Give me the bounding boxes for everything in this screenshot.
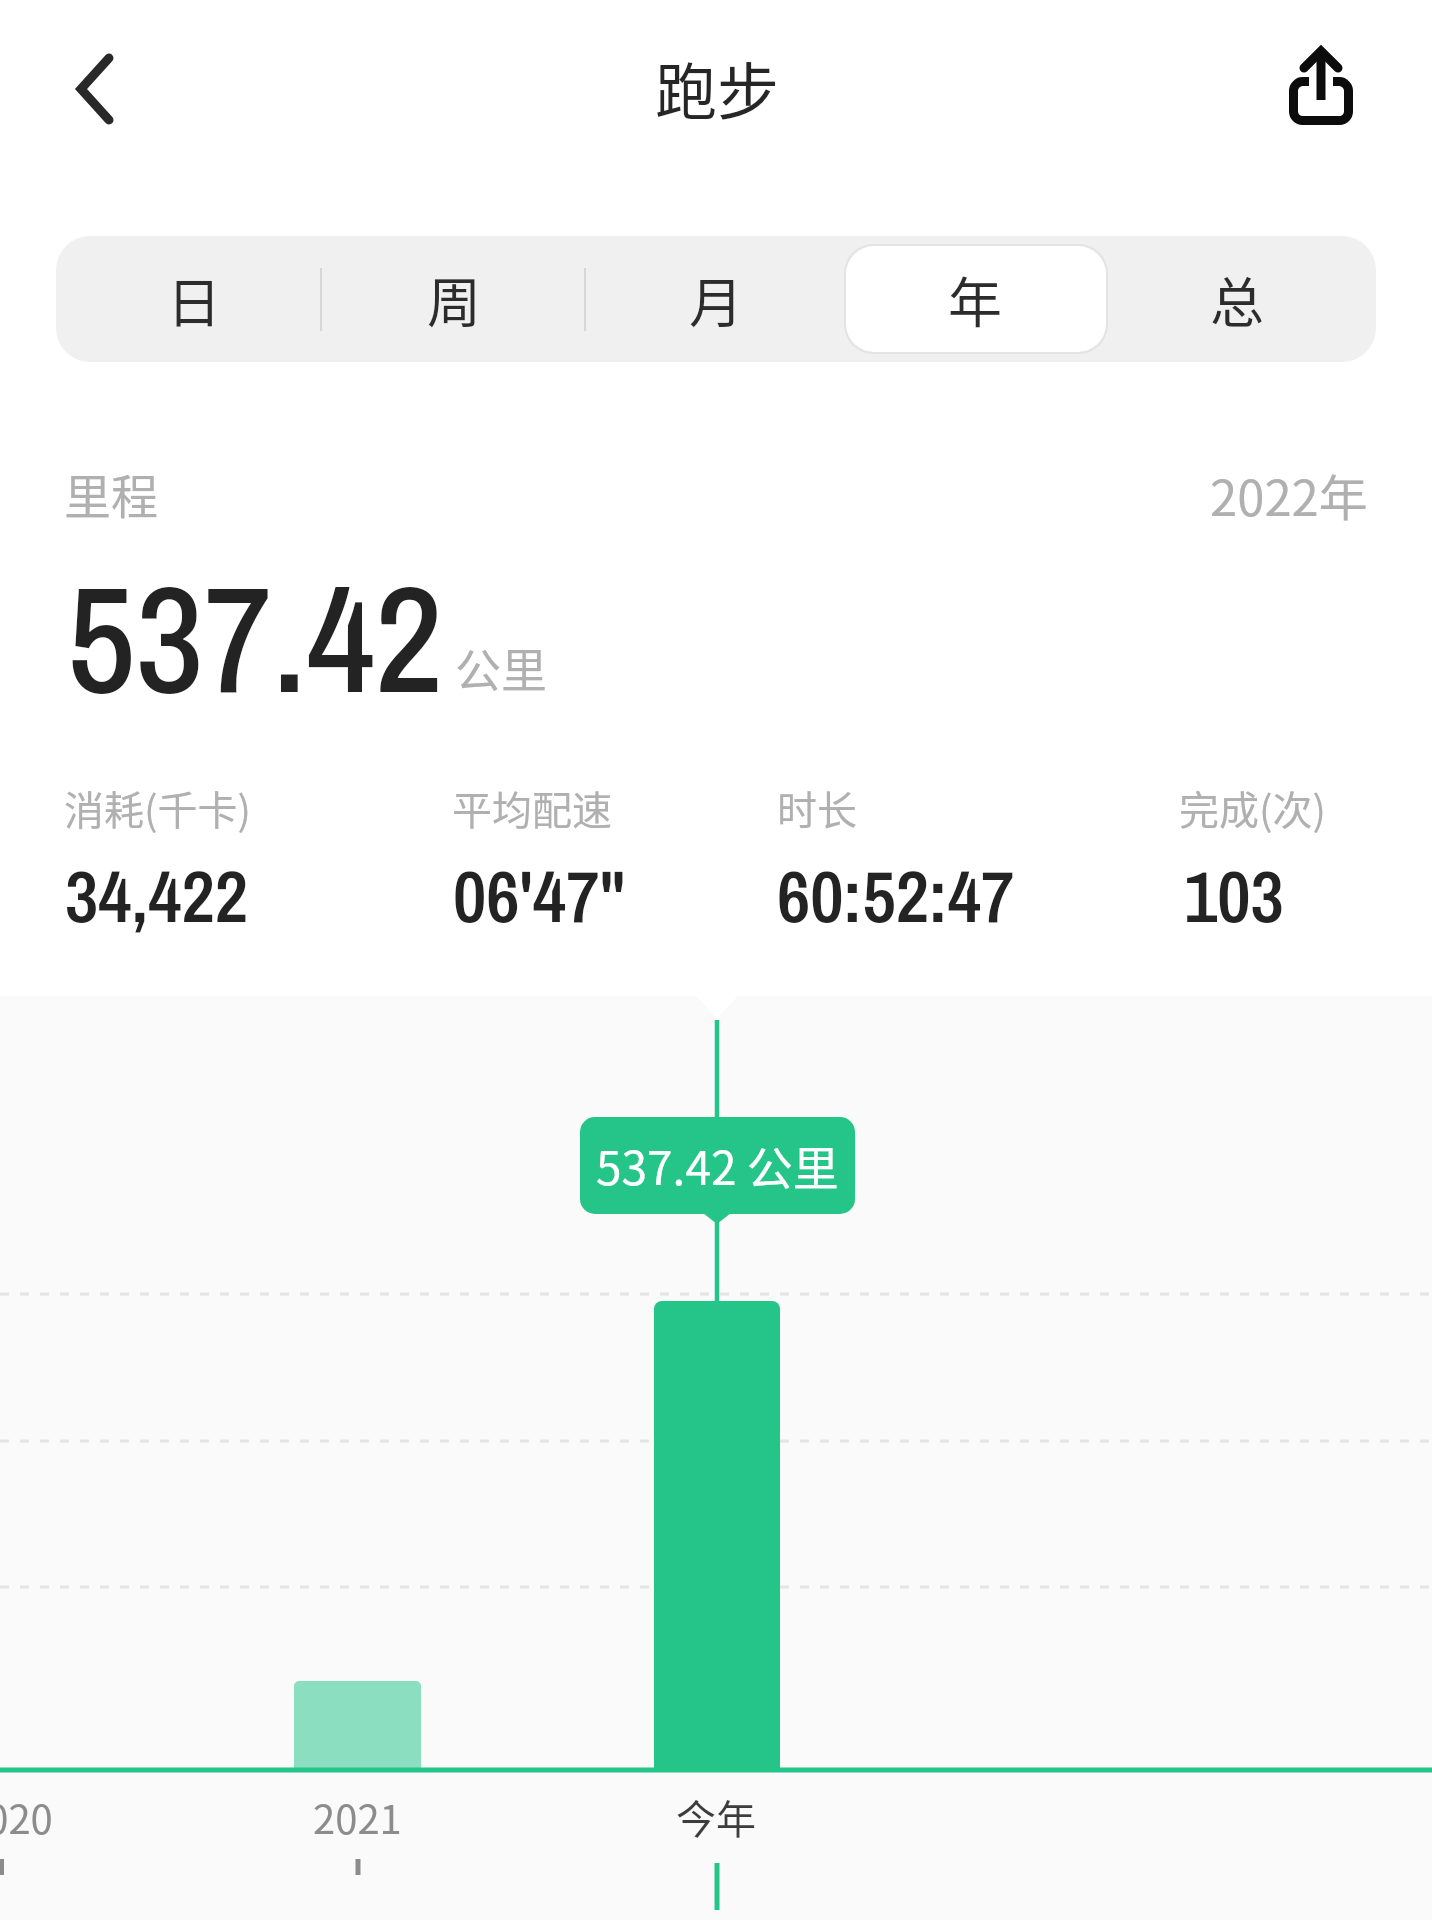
staticText: 消耗(千卡) — [64, 779, 252, 837]
staticText: 平均配速 — [452, 779, 612, 837]
staticText: 周 — [427, 260, 481, 338]
staticText: 今年 — [676, 1788, 756, 1846]
staticText: 34,422 — [65, 846, 249, 944]
staticText: 完成(次) — [1179, 779, 1327, 837]
staticText: 跑步 — [655, 43, 780, 133]
button[interactable]: 总 — [1112, 236, 1376, 362]
staticText: 2020 — [0, 1788, 53, 1846]
staticText: 总 — [1210, 260, 1264, 338]
staticText: 日 — [167, 260, 221, 338]
button[interactable]: 日 — [56, 236, 320, 362]
staticText: 2021 — [313, 1788, 402, 1846]
button[interactable]: Back — [40, 39, 144, 143]
staticText: 里程 — [64, 459, 158, 527]
staticText: 年 — [948, 260, 1002, 338]
button[interactable]: 年 — [848, 236, 1112, 362]
button[interactable]: 月 — [584, 236, 848, 362]
button[interactable]: Mileage bar chart — [0, 996, 1432, 1920]
staticText: 月 — [689, 260, 743, 338]
staticText: 103 — [1184, 846, 1284, 944]
staticText: 60:52:47 — [777, 846, 1015, 944]
staticText: 06'47" — [453, 846, 626, 944]
staticText: 公里 — [455, 634, 547, 701]
staticText: 537.42 — [67, 537, 444, 739]
staticText: 时长 — [777, 779, 857, 837]
button[interactable]: Share — [1268, 34, 1372, 138]
button[interactable]: 537.42 公里 — [580, 1117, 855, 1214]
staticText: 537.42 公里 — [596, 1132, 839, 1199]
button[interactable]: 周 — [320, 236, 584, 362]
staticText: 2022年 — [1210, 459, 1368, 530]
